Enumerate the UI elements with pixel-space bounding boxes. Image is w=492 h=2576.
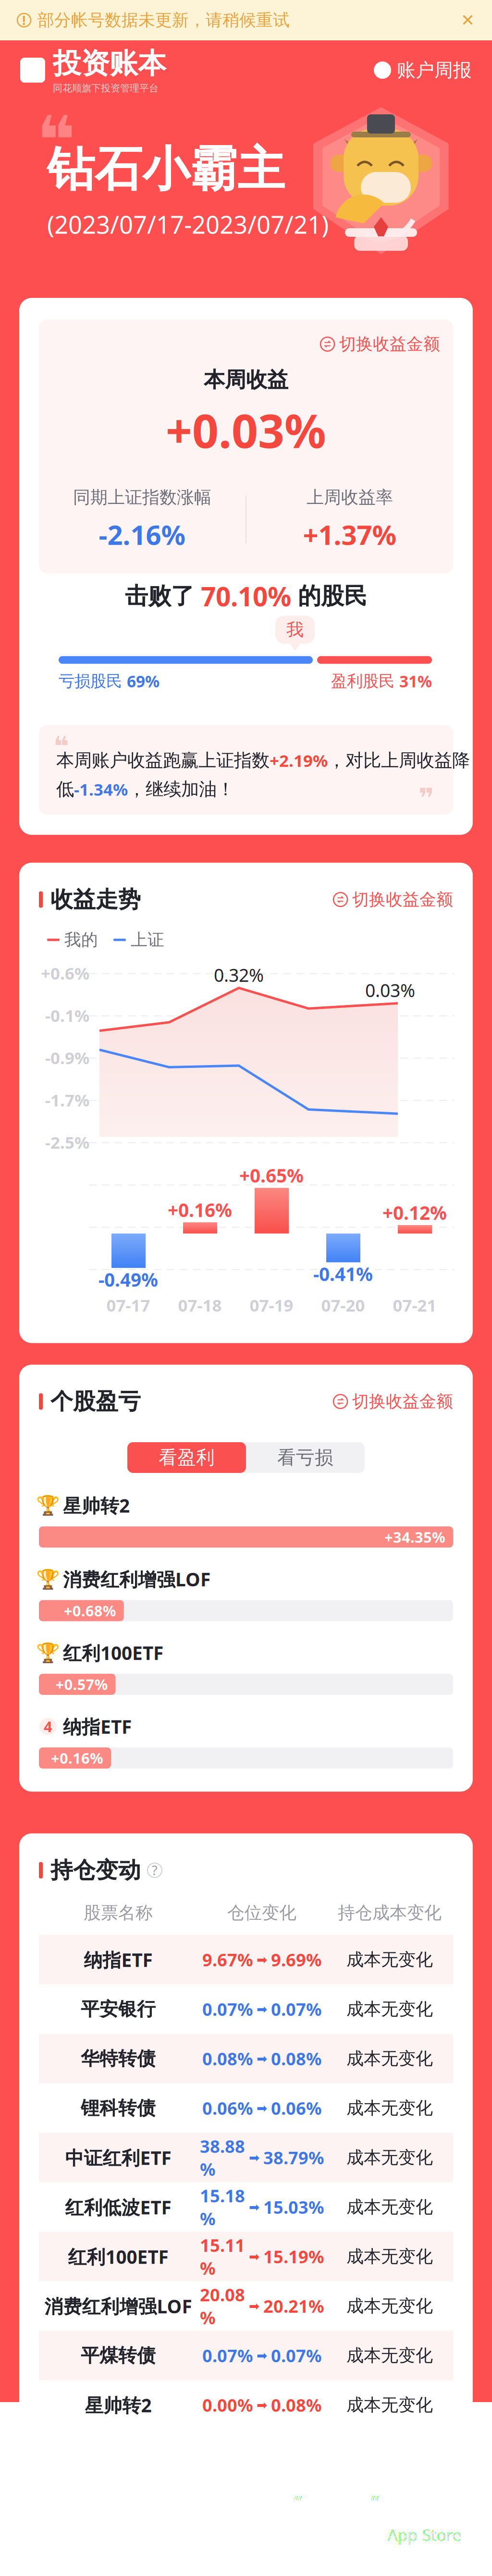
staticText: 投资账本 [53,46,166,81]
staticText: 本周收益 [204,367,288,393]
staticText: 成本无变化 [346,2147,433,2168]
button[interactable]: 切换收益金额 [333,889,453,910]
staticText: 成本无变化 [346,2098,433,2119]
button[interactable]: 看盈利 [127,1442,246,1473]
staticText: 成本无变化 [346,2295,433,2317]
staticText: 9.67% [202,1948,253,1971]
button[interactable]: 账户周报 [374,59,472,82]
staticText: ? [152,1862,158,1879]
staticText: 20.21% [263,2295,324,2318]
staticText: 切换收益金额 [352,889,453,910]
staticText: 个股盈亏 [50,1388,141,1415]
staticText: +0.16% [168,1197,232,1222]
staticText: 星帅转2 [85,2393,152,2417]
staticText: 07-19 [250,1294,293,1316]
staticText: +1.37% [303,517,397,552]
staticText: 钻石小霸主 [47,140,285,199]
staticText: 同花顺旗下投资管理平台 [53,82,159,94]
staticText: 38.79% [263,2146,324,2169]
staticText: 0.07% [271,1998,321,2021]
staticText: 07-17 [106,1294,150,1316]
staticText: 0.06% [271,2097,321,2120]
staticText: 0.08% [271,2047,321,2070]
staticText: ➡ [257,2002,267,2016]
button[interactable]: 切换收益金额 [320,334,440,354]
staticText: 0.07% [271,2344,321,2367]
staticText: ➡ [249,2249,259,2264]
staticText: ➡ [249,2150,259,2165]
staticText: 搜索“投资账本” [259,2490,379,2513]
staticText: 仓位变化 [227,1902,296,1923]
staticText: 盈利股民 [331,671,399,691]
staticText: 成本无变化 [346,2048,433,2069]
staticText: 红利100ETF [68,2244,168,2269]
staticText: 聪明明明 [24,2507,101,2530]
staticText: +0.65% [239,1163,304,1188]
staticText: ，继续加油！ [128,778,234,800]
staticText: 我的 [64,930,98,950]
button[interactable]: 切换收益金额 [333,1391,453,1412]
staticText: 红利低波ETF [65,2195,171,2219]
staticText: 中证红利ETF [65,2145,171,2170]
staticText: 纳指ETF [63,1714,132,1739]
staticText: 成本无变化 [346,2394,433,2416]
staticText: 15.19% [263,2245,324,2268]
staticText: +0.57% [55,1675,108,1694]
staticText: 华特转债 [81,2047,156,2070]
staticText: 0.08% [271,2394,321,2417]
staticText: 亏损股民 [59,671,127,691]
staticText: 纳指ETF [84,1947,153,1972]
staticText: 星帅转2 [63,1493,130,1518]
staticText: ❝ [53,731,69,762]
staticText: -0.49% [98,1267,158,1292]
staticText: 本周账户收益跑赢上证指数 [56,749,270,771]
staticText: ! [22,12,26,29]
staticText: -1.34% [74,778,128,800]
button[interactable]: 关闭 [461,11,475,30]
button[interactable]: 看亏损 [246,1442,365,1473]
staticText: 红利100ETF [63,1640,163,1665]
staticText: ➡ [257,2101,267,2115]
staticText: 看盈利 [159,1446,215,1469]
staticText: 我 [286,619,304,640]
staticText: 成本无变化 [346,2246,433,2267]
staticText: +0.6% [41,962,89,984]
staticText: 0.08% [202,2047,253,2070]
staticText: -0.1% [45,1004,89,1026]
staticText: 上周收益率 [307,487,393,508]
staticText: 切换收益金额 [352,1391,453,1412]
staticText: 15.03% [263,2196,324,2219]
staticText: 07-20 [321,1294,365,1316]
staticText: 账户周报 [397,59,472,82]
staticText: 20.08% [200,2283,245,2329]
staticText: +2.19% [270,749,328,771]
staticText: 69% [127,671,160,692]
staticText: 上证 [131,930,164,950]
staticText: 0.06% [202,2097,253,2120]
staticText: 0.03% [365,978,415,1002]
staticText: ❝ [37,103,75,178]
staticText: -1.7% [45,1089,89,1111]
staticText: 消费红利增强LOF [63,1567,210,1591]
staticText: 31% [399,671,432,692]
staticText: 15.18% [200,2184,245,2230]
staticText: 07-18 [178,1294,222,1316]
staticText: ➡ [249,2299,259,2313]
staticText: ➡ [249,2200,259,2214]
staticText: +0.68% [64,1601,116,1620]
staticText: 平安银行 [81,1998,156,2021]
staticText: 4 [44,1717,52,1736]
staticText: 查看每周收益总结 [230,2524,369,2545]
staticText: 成本无变化 [346,1999,433,2020]
staticText: 0.07% [202,2344,253,2367]
staticText: ➡ [257,1952,267,1967]
staticText: 成本无变化 [346,2196,433,2218]
staticText: 70.10% [201,579,291,613]
staticText: 部分帐号数据未更新，请稍候重试 [37,10,290,30]
staticText: 9.69% [271,1948,321,1971]
staticText: 消费红利增强LOF [44,2294,192,2318]
staticText: +34.35% [384,1527,445,1547]
staticText: ✕ [461,11,475,30]
staticText: -2.5% [45,1131,89,1153]
staticText: 🏆 [36,1568,60,1590]
